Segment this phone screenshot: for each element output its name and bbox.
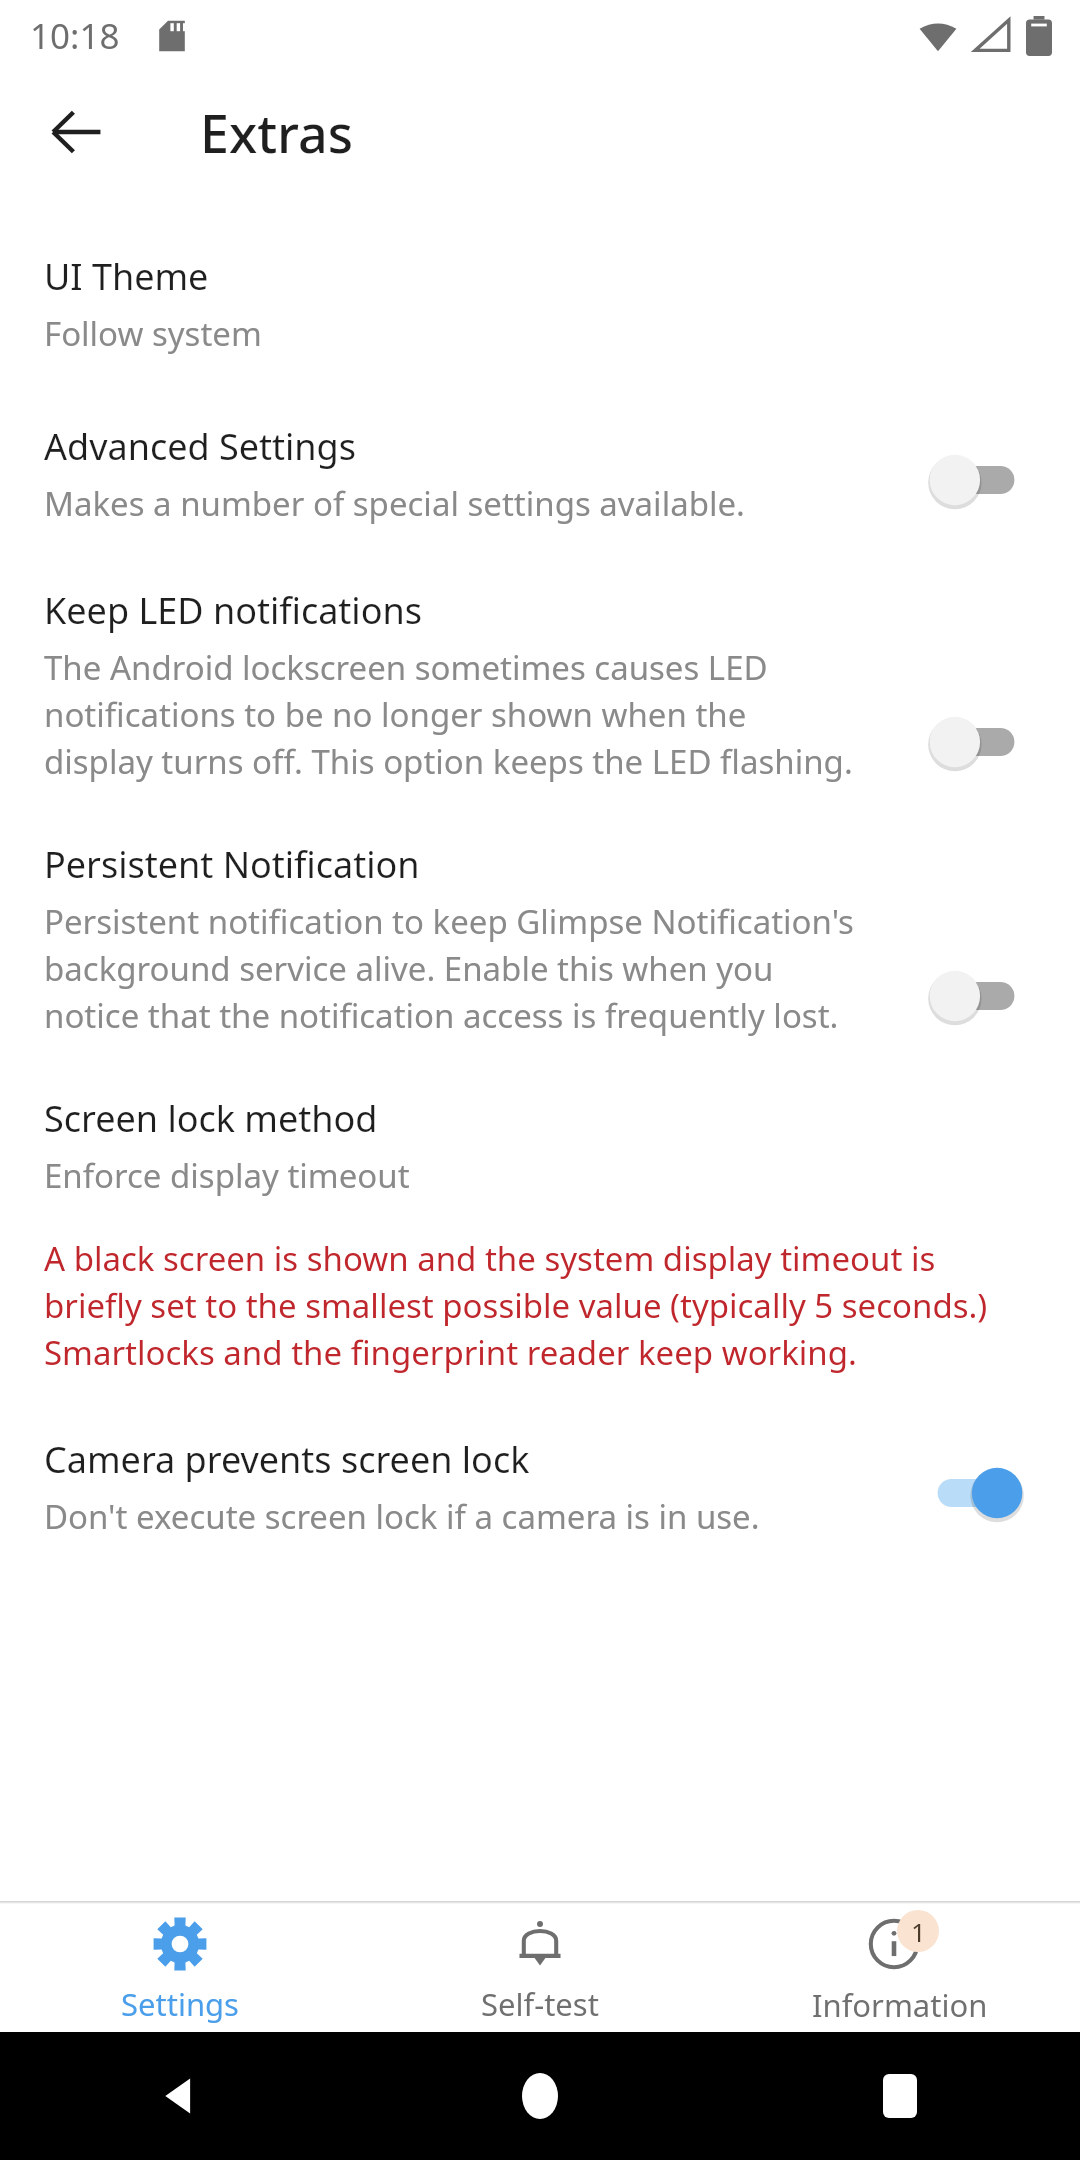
button[interactable]: Camera prevents screen lock <box>916 1457 1036 1529</box>
staticText: Keep LED notifications <box>44 586 422 635</box>
button[interactable]: Advanced Settings <box>916 444 1036 516</box>
button[interactable]: Camera prevents screen lock <box>0 1435 1080 1539</box>
button[interactable]: Home <box>500 2056 580 2136</box>
staticText: A black screen is shown and the system d… <box>44 1236 1040 1375</box>
staticText: 10:18 <box>30 12 120 60</box>
staticText: Self-test <box>481 1983 599 2025</box>
button[interactable]: Screen lock method <box>0 1094 1080 1198</box>
staticText: Information <box>812 1984 988 2026</box>
button[interactable]: UI Theme <box>0 252 1080 356</box>
staticText: Camera prevents screen lock <box>44 1435 530 1484</box>
button[interactable]: Persistent Notification <box>916 960 1036 1032</box>
staticText: UI Theme <box>44 252 209 301</box>
button[interactable]: Keep LED notifications <box>0 586 1080 784</box>
staticText: Persistent Notification <box>44 840 420 889</box>
staticText: Advanced Settings <box>44 422 356 471</box>
button[interactable]: Back <box>28 84 124 180</box>
staticText: 1 <box>911 1914 926 1949</box>
button[interactable]: Settings <box>0 1911 360 2025</box>
button[interactable]: Persistent Notification <box>0 840 1080 1038</box>
staticText: Extras <box>200 97 354 168</box>
staticText: The Android lockscreen sometimes causes … <box>44 645 854 784</box>
staticText: Persistent notification to keep Glimpse … <box>44 899 874 1038</box>
button[interactable]: Recent apps <box>860 2056 940 2136</box>
staticText: Follow system <box>44 311 262 356</box>
button[interactable]: Advanced Settings <box>0 422 1080 526</box>
button[interactable]: Self-test <box>360 1911 720 2025</box>
staticText: Settings <box>121 1983 239 2025</box>
button[interactable]: Back <box>140 2056 220 2136</box>
button[interactable]: 1 <box>720 1910 1080 2026</box>
staticText: Don't execute screen lock if a camera is… <box>44 1494 760 1539</box>
button[interactable]: Keep LED notifications <box>916 706 1036 778</box>
staticText: Screen lock method <box>44 1094 378 1143</box>
staticText: Enforce display timeout <box>44 1153 410 1198</box>
staticText: Makes a number of special settings avail… <box>44 481 745 526</box>
